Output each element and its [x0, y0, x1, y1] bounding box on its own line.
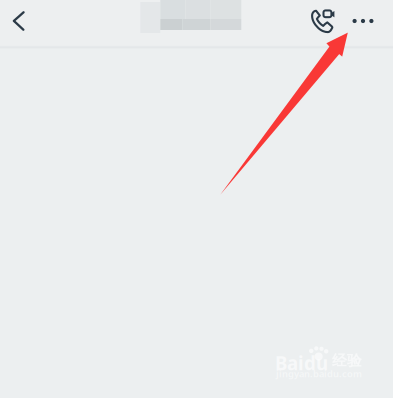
- staticText: 经验: [332, 351, 362, 369]
- staticText: Baidu: [275, 350, 328, 375]
- button[interactable]: More options: [342, 0, 384, 43]
- button[interactable]: Back: [0, 0, 40, 43]
- button[interactable]: Video call: [301, 0, 343, 44]
- staticText: jingyan.baidu.com: [276, 367, 362, 380]
